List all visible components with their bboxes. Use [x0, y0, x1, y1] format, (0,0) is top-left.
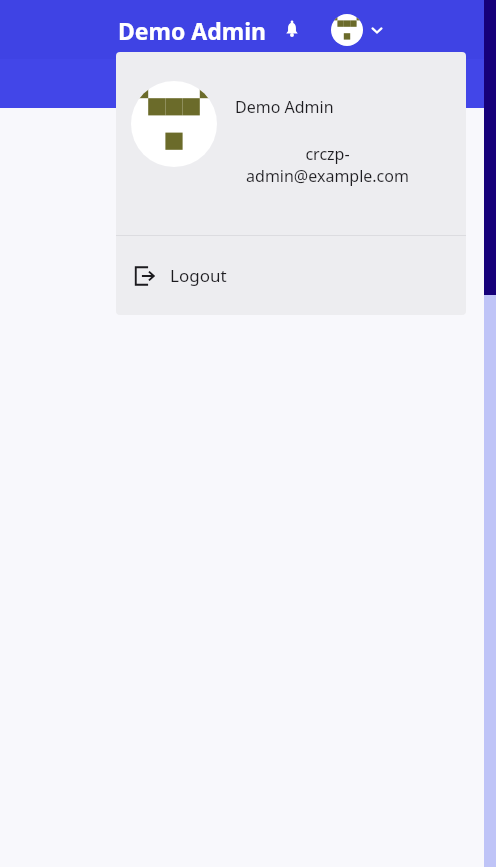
button[interactable]: Account menu — [329, 12, 387, 48]
staticText: Demo Admin — [235, 96, 334, 118]
button[interactable]: Logout — [116, 236, 466, 315]
staticText: Demo Admin — [118, 15, 267, 46]
staticText: Logout — [170, 264, 227, 287]
staticText: crczp-admin@example.com — [235, 143, 420, 187]
button[interactable]: Notifications — [277, 15, 307, 45]
